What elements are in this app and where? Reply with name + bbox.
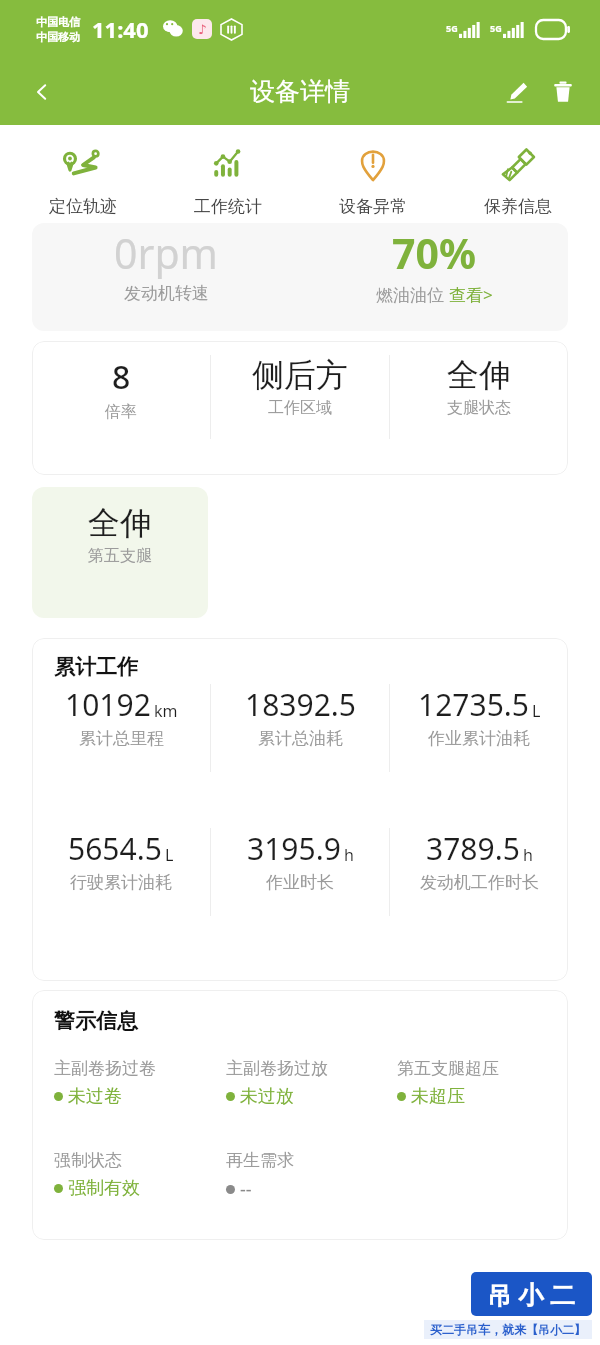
staticText: 燃油油位 xyxy=(376,283,449,306)
staticText: ♪ xyxy=(198,22,207,37)
staticText: 未过卷 xyxy=(68,1085,122,1108)
button[interactable]: Back xyxy=(20,70,64,114)
staticText: 工作区域 xyxy=(268,398,332,418)
staticText: 累计总里程 xyxy=(79,728,164,749)
button[interactable]: 工作统计 xyxy=(155,138,300,221)
staticText: 累计总油耗 xyxy=(258,728,343,749)
button[interactable]: 保养信息 xyxy=(445,138,590,221)
staticText: 发动机工作时长 xyxy=(420,872,539,893)
staticText: 作业累计油耗 xyxy=(428,728,530,749)
button[interactable]: 5654.5 xyxy=(32,828,210,893)
button[interactable]: 定位轨迹 xyxy=(10,138,155,221)
staticText: 累计工作 xyxy=(54,654,138,680)
staticText: 未过放 xyxy=(240,1085,294,1108)
staticText: 70% xyxy=(392,225,476,281)
button[interactable]: 设备异常 xyxy=(300,138,445,221)
staticText: 5G xyxy=(446,22,458,34)
button[interactable]: 8 xyxy=(32,341,568,475)
staticText: 0rpm xyxy=(114,225,218,281)
staticText: 3195.9 xyxy=(247,828,341,869)
staticText: 强制有效 xyxy=(68,1177,140,1200)
button[interactable]: 第五支腿超压 xyxy=(397,1058,568,1108)
button[interactable]: 3195.9 xyxy=(211,828,389,893)
staticText: 支腿状态 xyxy=(447,398,511,418)
button[interactable]: 强制状态 xyxy=(54,1150,226,1200)
button[interactable]: 全伸 xyxy=(32,487,208,618)
staticText: 主副卷扬过卷 xyxy=(54,1058,156,1079)
staticText: 作业时长 xyxy=(266,872,334,893)
button[interactable]: 18392.5 xyxy=(211,684,389,749)
staticText: 警示信息 xyxy=(54,1008,138,1034)
button[interactable]: 12735.5 xyxy=(390,684,568,749)
staticText: 设备详情 xyxy=(250,76,350,107)
staticText: 12735.5 xyxy=(418,684,529,725)
staticText: 发动机转速 xyxy=(124,283,209,304)
staticText: 工作统计 xyxy=(194,196,262,217)
staticText: 中国移动 xyxy=(36,30,80,44)
staticText: h xyxy=(344,844,354,866)
staticText: 全伸 xyxy=(88,503,152,543)
staticText: 再生需求 xyxy=(226,1150,294,1171)
button[interactable]: 主副卷扬过卷 xyxy=(54,1058,226,1108)
staticText: 强制状态 xyxy=(54,1150,122,1171)
staticText: 10192 xyxy=(65,684,151,725)
button[interactable]: 10192 xyxy=(32,684,210,749)
staticText: 主副卷扬过放 xyxy=(226,1058,328,1079)
staticText: 买二手吊车，就来【吊小二】 xyxy=(430,1322,586,1337)
staticText: 倍率 xyxy=(105,402,137,422)
staticText: 未超压 xyxy=(411,1085,465,1108)
staticText: 保养信息 xyxy=(484,196,552,217)
staticText: 5G xyxy=(490,22,502,34)
staticText: 侧后方 xyxy=(252,355,348,395)
staticText: 设备异常 xyxy=(339,196,407,217)
staticText: km xyxy=(154,700,178,722)
button[interactable]: Delete xyxy=(540,69,586,115)
staticText: L xyxy=(532,700,541,722)
staticText: 11:40 xyxy=(92,14,149,44)
button[interactable]: 0rpm xyxy=(32,223,568,331)
staticText: 第五支腿超压 xyxy=(397,1058,499,1079)
staticText: 定位轨迹 xyxy=(49,196,117,217)
staticText: 全伸 xyxy=(447,355,511,395)
staticText: L xyxy=(165,844,174,866)
staticText: 第五支腿 xyxy=(88,546,152,566)
staticText: 18392.5 xyxy=(245,684,356,725)
button[interactable]: 主副卷扬过放 xyxy=(226,1058,397,1108)
staticText: 中国电信 xyxy=(36,15,80,29)
button[interactable]: 查看> xyxy=(449,283,493,306)
staticText: 3789.5 xyxy=(426,828,520,869)
button[interactable]: Edit xyxy=(494,69,540,115)
staticText: 8 xyxy=(112,355,131,399)
staticText: h xyxy=(523,844,533,866)
button[interactable]: 再生需求 xyxy=(226,1150,397,1202)
staticText: 吊 小 二 xyxy=(487,1277,576,1311)
staticText: 行驶累计油耗 xyxy=(70,872,172,893)
staticText: 5654.5 xyxy=(68,828,162,869)
button[interactable]: 3789.5 xyxy=(390,828,568,893)
staticText: -- xyxy=(240,1177,252,1202)
